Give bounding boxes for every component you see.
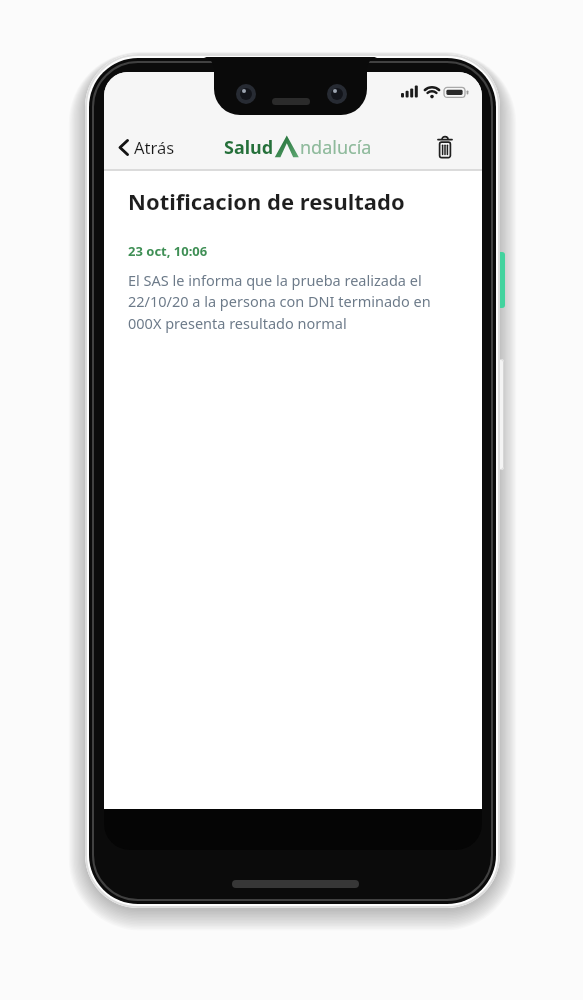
staticText: El SAS le informa que la prueba realizad… (128, 270, 431, 333)
button[interactable] (429, 130, 460, 163)
staticText: Salud (224, 135, 274, 160)
staticText: Atrás (134, 136, 175, 158)
staticText: ndalucía (300, 135, 372, 160)
staticText: 23 oct, 10:06 (128, 242, 208, 260)
staticText: Notificacion de resultado (128, 186, 405, 216)
button[interactable] (494, 359, 504, 470)
button[interactable] (494, 252, 505, 308)
button[interactable]: Atrás (114, 132, 175, 162)
